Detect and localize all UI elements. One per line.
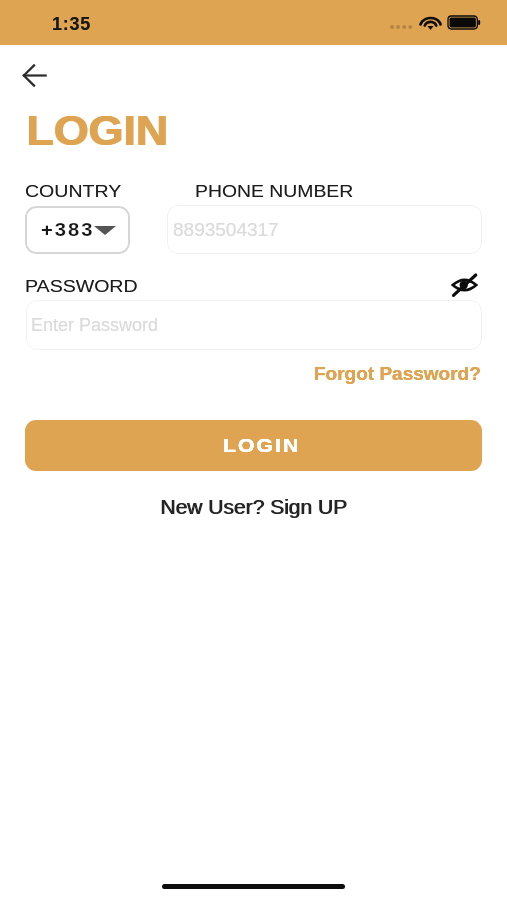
staticText: LOGIN	[223, 436, 300, 456]
staticText: 8893504317	[173, 219, 279, 240]
staticText: COUNTRY	[25, 182, 122, 201]
button[interactable]: New User? Sign UP	[160, 495, 347, 518]
button[interactable]: Enter Password	[26, 300, 482, 350]
staticText: PASSWORD	[25, 277, 138, 296]
staticText: New User? Sign UP	[161, 495, 348, 518]
staticText: Forgot Password?	[314, 363, 481, 384]
staticText: 1:35	[52, 14, 91, 34]
button[interactable]: Show password	[448, 268, 481, 301]
staticText: LOGIN	[26, 107, 168, 154]
staticText: COUNTRY	[25, 182, 122, 201]
staticText: +383	[41, 220, 95, 240]
staticText: LOGIN	[223, 436, 300, 456]
staticText: PASSWORD	[25, 277, 138, 296]
button[interactable]: 8893504317	[167, 205, 482, 254]
button[interactable]: LOGIN	[25, 420, 482, 471]
staticText: Enter Password	[31, 315, 159, 335]
staticText: PHONE NUMBER	[195, 182, 353, 201]
staticText: PHONE NUMBER	[195, 182, 353, 201]
button[interactable]: Back	[14, 55, 55, 96]
staticText: New User? Sign UP	[160, 495, 347, 518]
button[interactable]: Forgot Password?	[314, 363, 481, 384]
staticText: LOGIN	[27, 107, 169, 154]
staticText: Forgot Password?	[314, 363, 481, 384]
staticText: 1:35	[52, 14, 91, 34]
button[interactable]: +383	[25, 206, 130, 254]
